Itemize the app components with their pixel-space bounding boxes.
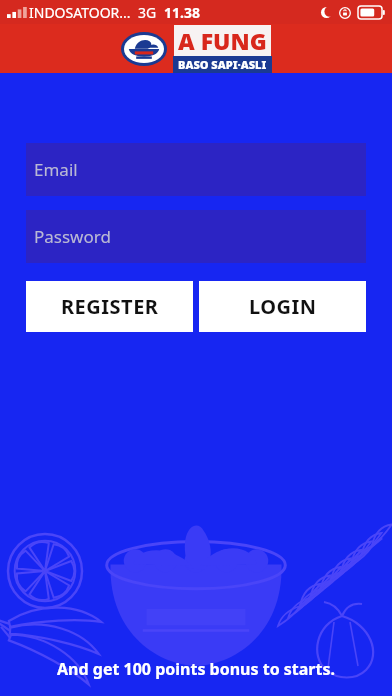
staticText: REGISTER bbox=[61, 293, 159, 320]
staticText: Password bbox=[34, 225, 111, 248]
staticText: LOGIN bbox=[249, 293, 317, 320]
staticText: A FUNG bbox=[178, 25, 267, 56]
staticText: And get 100 points bonus to starts. bbox=[57, 658, 335, 680]
staticText: Email bbox=[34, 158, 78, 181]
staticText: 3G bbox=[138, 3, 157, 22]
staticText: INDOSATOOR... bbox=[29, 3, 131, 22]
button[interactable]: Email bbox=[26, 143, 366, 196]
button[interactable]: REGISTER bbox=[26, 281, 193, 332]
staticText: 11.38 bbox=[164, 3, 200, 22]
staticText: BASO SAPI·ASLI bbox=[178, 57, 267, 72]
button[interactable]: LOGIN bbox=[199, 281, 366, 332]
button[interactable]: Password bbox=[26, 210, 366, 263]
